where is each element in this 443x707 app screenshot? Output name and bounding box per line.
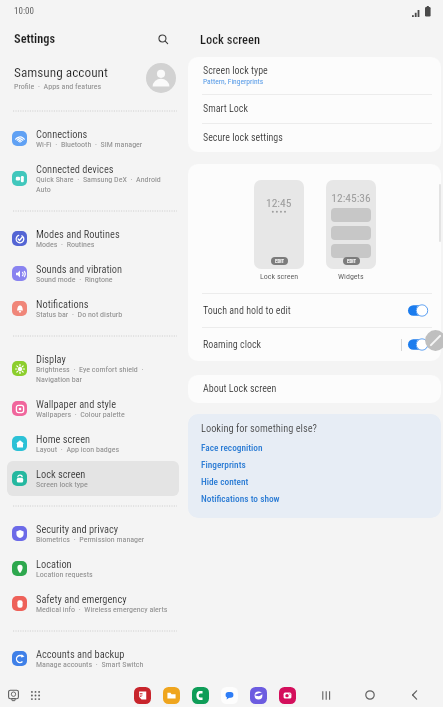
- button[interactable]: Edit Lock screen: [271, 257, 288, 265]
- button[interactable]: Lock screen: [7, 461, 179, 496]
- button[interactable]: Location: [7, 551, 179, 586]
- staticText: Safety and emergency: [36, 593, 127, 605]
- button[interactable]: Search: [153, 29, 173, 49]
- staticText: 10:00: [14, 6, 34, 17]
- staticText: Lock screen: [36, 468, 86, 480]
- staticText: Roaming clock: [203, 339, 401, 351]
- button[interactable]: Recents: [317, 686, 335, 704]
- staticText: EDIT: [275, 258, 285, 264]
- button[interactable]: Home screen: [7, 426, 179, 461]
- staticText: Location: [36, 558, 72, 570]
- button[interactable]: Face recognition: [201, 439, 428, 456]
- staticText: Connected devices: [36, 163, 114, 175]
- button[interactable]: Samsung Notes: [134, 687, 151, 704]
- button[interactable]: Samsung account: [0, 55, 186, 101]
- staticText: Medical info · Wireless emergency alerts: [36, 605, 168, 614]
- button[interactable]: Display: [7, 346, 179, 391]
- button[interactable]: Back: [405, 686, 423, 704]
- staticText: Display: [36, 353, 66, 365]
- staticText: Lock screen: [260, 272, 299, 281]
- button[interactable]: About Lock screen: [188, 375, 441, 403]
- staticText: EDIT: [347, 258, 357, 264]
- button[interactable]: Internet: [250, 687, 267, 704]
- button[interactable]: Secure lock settings: [188, 124, 441, 152]
- button[interactable]: Modes and Routines: [7, 221, 179, 256]
- staticText: Screen lock type: [203, 65, 268, 77]
- staticText: Profile · Apps and features: [14, 82, 102, 91]
- button[interactable]: Smart Lock: [188, 95, 441, 123]
- button[interactable]: Wallpaper and style: [7, 391, 179, 426]
- staticText: Sound mode · Ringtone: [36, 275, 113, 284]
- staticText: Security and privacy: [36, 523, 119, 535]
- button[interactable]: Hide content: [201, 473, 428, 490]
- button[interactable]: Edit Widgets: [343, 257, 360, 265]
- staticText: Location requests: [36, 570, 93, 579]
- staticText: Pattern, Fingerprints: [203, 77, 264, 86]
- button[interactable]: Camera: [279, 687, 296, 704]
- staticText: Wi-Fi · Bluetooth · SIM manager: [36, 140, 143, 149]
- button[interactable]: Notifications to show: [201, 490, 428, 507]
- button[interactable]: Notifications: [7, 291, 179, 326]
- staticText: Settings: [14, 32, 56, 46]
- button[interactable]: Accounts and backup: [7, 641, 179, 676]
- button[interactable]: Recent apps: [4, 686, 22, 704]
- staticText: About Lock screen: [203, 383, 277, 395]
- staticText: Face recognition: [201, 442, 263, 453]
- staticText: Accounts and backup: [36, 648, 125, 660]
- staticText: Notifications: [36, 298, 89, 310]
- button[interactable]: Toggle Roaming clock: [408, 338, 428, 351]
- button[interactable]: Phone: [192, 687, 209, 704]
- button[interactable]: My Files: [163, 687, 180, 704]
- staticText: Sounds and vibration: [36, 263, 123, 275]
- staticText: Touch and hold to edit: [203, 305, 408, 317]
- staticText: Smart Lock: [203, 103, 248, 115]
- staticText: Biometrics · Permission manager: [36, 535, 145, 544]
- staticText: Connections: [36, 128, 88, 140]
- staticText: Modes · Routines: [36, 240, 95, 249]
- staticText: Samsung account: [14, 65, 108, 81]
- staticText: Lock screen: [200, 32, 261, 47]
- staticText: Manage accounts · Smart Switch: [36, 660, 144, 669]
- staticText: Home screen: [36, 433, 91, 445]
- staticText: Notifications to show: [201, 493, 280, 504]
- button[interactable]: All apps: [26, 686, 44, 704]
- button[interactable]: Touch and hold to edit: [188, 294, 441, 327]
- staticText: Quick Share · Samsung DeX · Android Auto: [36, 175, 173, 194]
- button[interactable]: Home: [361, 686, 379, 704]
- staticText: Wallpapers · Colour palette: [36, 410, 125, 419]
- button[interactable]: Sounds and vibration: [7, 256, 179, 291]
- staticText: Fingerprints: [201, 459, 246, 470]
- staticText: Layout · App icon badges: [36, 445, 120, 454]
- staticText: Secure lock settings: [203, 132, 283, 144]
- staticText: Screen lock type: [36, 480, 88, 489]
- staticText: Looking for something else?: [201, 422, 317, 434]
- button[interactable]: Safety and emergency: [7, 586, 179, 621]
- button[interactable]: Fingerprints: [201, 456, 428, 473]
- staticText: Brightness · Eye comfort shield · Naviga…: [36, 365, 173, 384]
- staticText: Modes and Routines: [36, 228, 120, 240]
- button[interactable]: Toggle Touch and hold to edit: [408, 304, 428, 317]
- button[interactable]: 12:45: [254, 180, 304, 269]
- staticText: Status bar · Do not disturb: [36, 310, 123, 319]
- staticText: 12:45:36: [331, 191, 371, 204]
- button[interactable]: Connections: [7, 121, 179, 156]
- button[interactable]: Connected devices: [7, 156, 179, 201]
- staticText: Widgets: [338, 272, 364, 281]
- button[interactable]: 12:45:36: [326, 180, 376, 269]
- button[interactable]: Screen lock type: [188, 57, 441, 94]
- button[interactable]: Security and privacy: [7, 516, 179, 551]
- button[interactable]: Messages: [221, 687, 238, 704]
- staticText: Hide content: [201, 476, 249, 487]
- button[interactable]: Roaming clock: [188, 328, 441, 361]
- staticText: 12:45: [266, 196, 292, 209]
- staticText: Wallpaper and style: [36, 398, 117, 410]
